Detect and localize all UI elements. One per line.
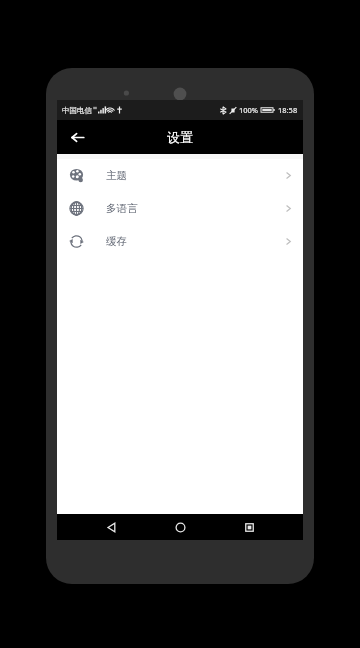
button[interactable]: Back <box>96 514 126 540</box>
button[interactable]: 主题 <box>57 159 303 192</box>
staticText: 中国电信 <box>62 106 92 115</box>
staticText: 18:58 <box>278 105 298 115</box>
staticText: 100% <box>239 105 259 115</box>
button[interactable]: Home <box>165 514 195 540</box>
staticText: 多语言 <box>106 202 138 215</box>
button[interactable]: Recent apps <box>234 514 264 540</box>
button[interactable]: 缓存 <box>57 225 303 258</box>
button[interactable]: 多语言 <box>57 192 303 225</box>
staticText: 主题 <box>106 169 127 182</box>
button[interactable]: Back <box>64 124 90 150</box>
staticText: 缓存 <box>106 235 127 248</box>
staticText: 设置 <box>167 129 193 145</box>
